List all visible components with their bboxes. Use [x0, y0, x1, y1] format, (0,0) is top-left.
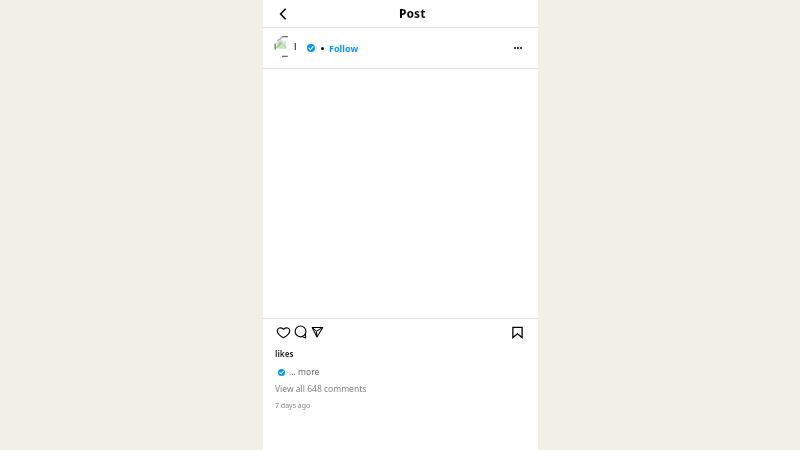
button[interactable]: View all 648 comments	[275, 383, 367, 395]
button[interactable]: Like	[274, 323, 292, 341]
button[interactable]: Follow	[329, 37, 359, 59]
button[interactable]: l	[292, 37, 298, 59]
button[interactable]: Profile picture	[270, 32, 300, 62]
button[interactable]: ... more	[278, 366, 320, 378]
button[interactable]: likes	[275, 348, 294, 359]
button[interactable]: Share	[308, 323, 326, 341]
staticText: View all 648 comments	[275, 383, 367, 395]
button[interactable]: Save	[508, 323, 526, 341]
staticText: likes	[275, 348, 294, 359]
staticText: Post	[399, 5, 426, 21]
button[interactable]: Comment	[292, 323, 310, 341]
button[interactable]: Back	[272, 3, 294, 25]
staticText: l	[294, 40, 297, 52]
staticText: 7 days ago	[275, 401, 311, 411]
staticText: ... more	[289, 366, 320, 378]
button[interactable]: More options	[507, 37, 529, 59]
staticText: Follow	[329, 42, 359, 54]
